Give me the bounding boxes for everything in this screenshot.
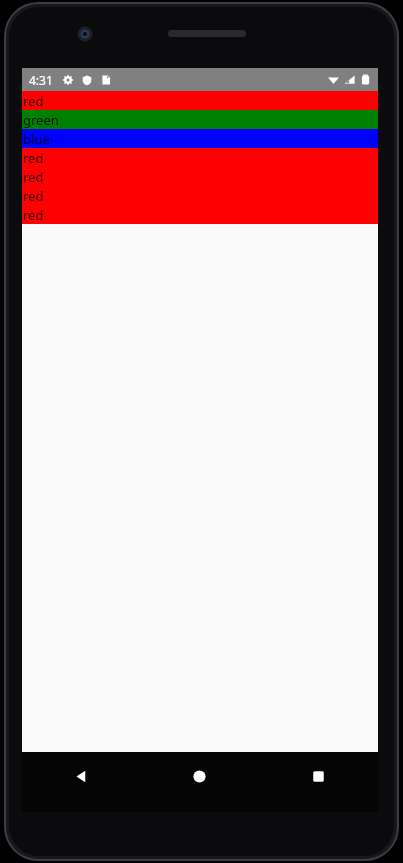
button[interactable]: red: [22, 205, 378, 224]
staticText: red: [23, 187, 44, 205]
staticText: blue: [23, 130, 50, 148]
button[interactable]: red: [22, 186, 378, 205]
staticText: green: [23, 111, 59, 129]
staticText: red: [23, 168, 44, 186]
button[interactable]: red: [22, 167, 378, 186]
staticText: red: [23, 206, 44, 224]
button[interactable]: green: [22, 110, 378, 129]
button[interactable]: Back: [22, 752, 140, 800]
staticText: red: [23, 92, 44, 110]
button[interactable]: red: [22, 91, 378, 110]
button[interactable]: Recent apps: [259, 752, 378, 800]
button[interactable]: red: [22, 148, 378, 167]
staticText: 4:31: [29, 72, 53, 88]
button[interactable]: blue: [22, 129, 378, 148]
button[interactable]: Home: [140, 752, 259, 800]
staticText: red: [23, 149, 44, 167]
